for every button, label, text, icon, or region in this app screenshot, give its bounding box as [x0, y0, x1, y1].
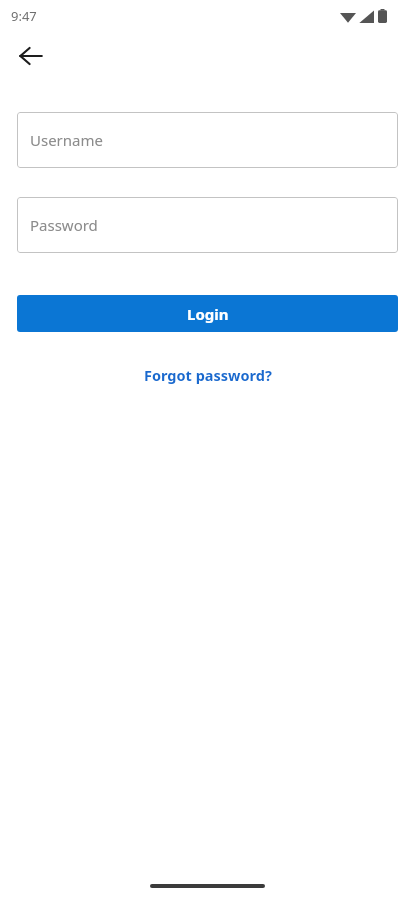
staticText: Password [30, 215, 98, 235]
staticText: 9:47 [11, 7, 37, 25]
button[interactable]: Back [10, 36, 50, 76]
staticText: Forgot password? [144, 365, 272, 385]
button[interactable]: Forgot password? [138, 362, 278, 388]
staticText: Username [30, 130, 103, 150]
button[interactable]: Password [17, 197, 398, 253]
staticText: Login [187, 304, 229, 324]
button[interactable]: Username [17, 112, 398, 168]
button[interactable]: Login [17, 295, 398, 332]
